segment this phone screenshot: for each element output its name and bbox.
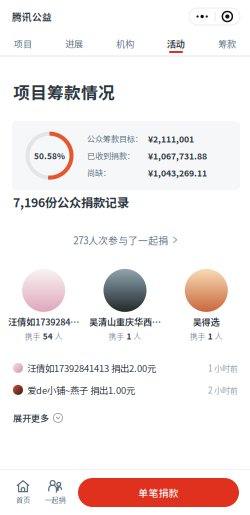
staticText: ¥2,111,001 (148, 132, 194, 145)
staticText: 项目 (14, 37, 32, 50)
button[interactable]: 273人次参与了一起捐 (0, 211, 250, 269)
staticText: 携手 (108, 330, 124, 342)
button[interactable]: 汪倩如17392841413 捐出2.00元 (0, 357, 250, 379)
staticText: 单笔捐款 (138, 485, 178, 500)
staticText: 吴清山重庆华西… (89, 315, 161, 328)
staticText: 汪倩如17392841413 捐出2.00元 (27, 361, 156, 375)
staticText: 1 (126, 330, 131, 342)
staticText: 1 (208, 330, 213, 342)
staticText: 人 (215, 330, 223, 342)
staticText: 项目筹款情况 (13, 80, 115, 104)
button[interactable]: Close (215, 8, 239, 25)
button[interactable]: 单笔捐款 (78, 478, 239, 507)
staticText: 携手 (190, 330, 206, 342)
button[interactable]: 进展 (48, 32, 99, 55)
button[interactable]: 机构 (99, 32, 150, 55)
button[interactable]: 活动 (150, 32, 201, 55)
staticText: 人 (133, 330, 141, 342)
button[interactable]: 爱de小铺~燕子 捐出1.00元 (0, 379, 250, 401)
staticText: 尚缺： (87, 167, 111, 178)
staticText: 汪倩如1739284… (8, 315, 79, 328)
staticText: 爱de小铺~燕子 捐出1.00元 (27, 383, 135, 397)
staticText: 首页 (16, 495, 30, 505)
staticText: 一起捐 (44, 495, 65, 505)
staticText: 54 (43, 330, 53, 342)
staticText: 公众筹款目标： (87, 133, 143, 144)
staticText: 腾讯公益 (12, 9, 52, 24)
staticText: 人 (55, 330, 63, 342)
staticText: 已收到捐款： (87, 150, 135, 161)
button[interactable]: 首页 (7, 474, 39, 510)
staticText: 携手 (25, 330, 41, 342)
button[interactable]: 一起捐 (39, 474, 71, 510)
staticText: 活动 (167, 37, 185, 50)
staticText: ¥1,043,269.11 (148, 166, 207, 179)
staticText: 50.58% (34, 150, 65, 162)
staticText: 筹款 (218, 37, 236, 50)
staticText: 机构 (116, 37, 134, 50)
staticText: 273人次参与了一起捐 (73, 233, 168, 247)
staticText: ¥1,067,731.88 (148, 149, 207, 162)
staticText: 进展 (65, 37, 83, 50)
staticText: 2 小时前 (208, 384, 238, 396)
staticText: 吴得选 (193, 315, 220, 328)
staticText: 展开更多 (13, 411, 49, 424)
button[interactable]: More (190, 8, 215, 25)
staticText: 7,196份公众捐款记录 (13, 193, 129, 211)
button[interactable]: 项目 (0, 32, 48, 55)
button[interactable]: 展开更多 (0, 401, 250, 427)
button[interactable]: 吴得选 (166, 269, 247, 345)
button[interactable]: 吴清山重庆华西… (84, 269, 166, 345)
button[interactable]: 汪倩如1739284… (3, 269, 84, 345)
staticText: 1 小时前 (208, 362, 238, 374)
button[interactable]: 筹款 (201, 32, 250, 55)
